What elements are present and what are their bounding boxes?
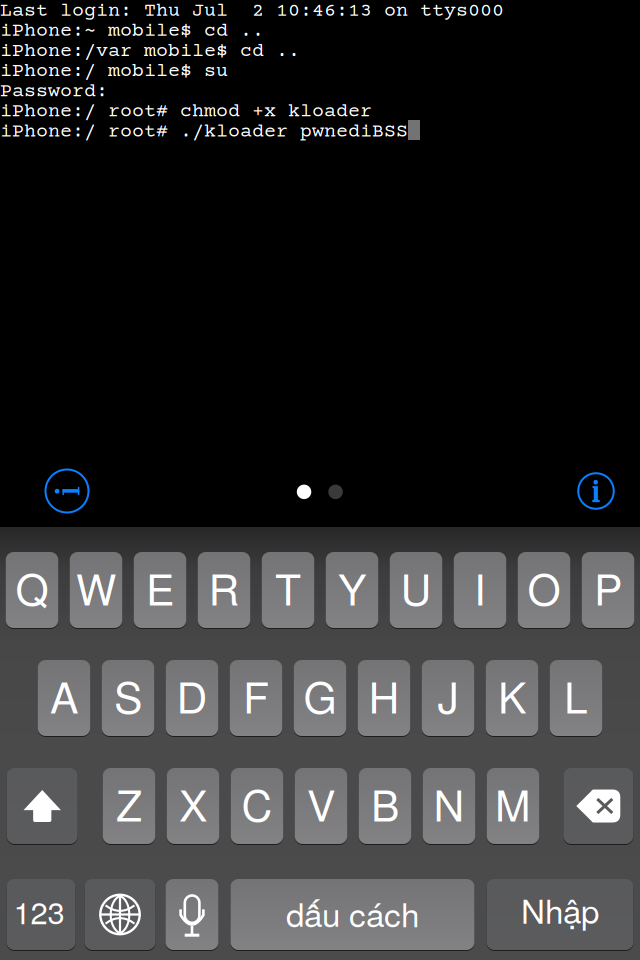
staticText: Y [338,556,366,618]
button[interactable]: Next keyboard [84,879,155,950]
button[interactable]: S [102,660,154,736]
button[interactable]: Shift [7,768,78,844]
staticText: D [176,664,207,726]
staticText: S [114,664,142,726]
staticText: R [208,556,239,618]
button[interactable]: Info [563,458,629,524]
button[interactable]: Sleep [34,458,100,524]
button[interactable]: V [295,768,347,844]
button[interactable]: Delete [563,768,633,844]
staticText: F [243,664,269,726]
staticText: X [179,772,207,834]
button[interactable]: D [166,660,218,736]
staticText: C [241,772,272,834]
staticText: iPhone:/ root# chmod +x kloader [0,101,372,123]
staticText: T [275,556,301,618]
button[interactable]: F [230,660,282,736]
button[interactable]: Y [326,552,378,628]
button[interactable]: G [294,660,346,736]
staticText: V [307,772,335,834]
staticText: I [474,556,486,618]
button[interactable]: Nhập [486,879,633,950]
staticText: iPhone:/var mobile$ cd .. [0,40,300,63]
staticText: P [594,556,622,618]
staticText: Q [15,556,48,618]
button[interactable]: C [231,768,283,844]
button[interactable]: T [262,552,314,628]
button[interactable]: L [550,660,602,736]
staticText: Nhập [521,886,599,933]
staticText: dấu cách [286,889,419,937]
button[interactable]: N [423,768,475,844]
staticText: O [527,556,560,618]
staticText: L [564,664,588,726]
button[interactable]: Dictate [165,879,218,950]
staticText: W [76,556,116,618]
staticText: Password: [0,80,108,103]
staticText: Last login: Thu Jul 2 10:46:13 on ttys00… [0,0,504,22]
staticText: G [303,664,336,726]
button[interactable]: Q [6,552,58,628]
button[interactable]: W [70,552,122,628]
staticText: Z [116,772,142,834]
button[interactable]: B [359,768,411,844]
button[interactable]: I [454,552,506,628]
button[interactable]: H [358,660,410,736]
staticText: N [433,772,464,834]
staticText: H [368,664,399,726]
button[interactable]: R [198,552,250,628]
button[interactable]: K [486,660,538,736]
button[interactable]: 123 [6,879,75,950]
staticText: M [495,772,531,834]
staticText: iPhone:/ root# ./kloader pwnediBSS [0,121,408,143]
staticText: U [400,556,431,618]
button[interactable]: U [390,552,442,628]
staticText: B [371,772,399,834]
button[interactable]: O [518,552,570,628]
staticText: J [437,664,458,726]
staticText: iPhone:~ mobile$ cd .. [0,20,264,43]
button[interactable]: X [167,768,219,844]
button[interactable]: E [134,552,186,628]
staticText: K [498,664,526,726]
staticText: 123 [13,889,64,933]
button[interactable]: Z [103,768,155,844]
staticText: E [146,556,174,618]
button[interactable]: A [38,660,90,736]
staticText: A [50,664,78,726]
button[interactable]: P [582,552,634,628]
button[interactable]: dấu cách [230,879,474,950]
staticText: iPhone:/ mobile$ su [0,60,228,83]
button[interactable]: J [422,660,474,736]
button[interactable]: M [487,768,539,844]
